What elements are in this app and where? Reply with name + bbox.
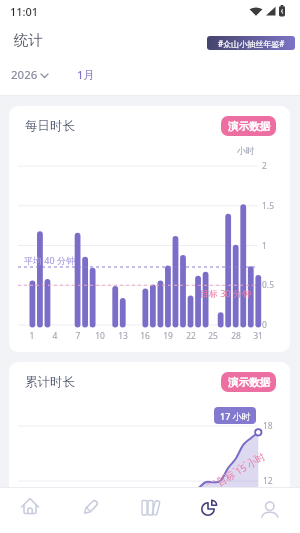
staticText: 每日时长 [25,118,75,134]
staticText: 22 [183,330,199,342]
staticText: 统计 [14,31,43,49]
button[interactable]: 2026 [11,67,50,83]
staticText: 目标 15 小时 [214,450,267,489]
staticText: 2 [262,160,267,172]
staticText: 7 [70,330,86,342]
staticText: 17 小时 [220,410,251,422]
button[interactable]: 1月 [77,67,95,82]
button[interactable] [0,487,60,533]
button[interactable] [180,487,240,533]
staticText: 1.5 [262,200,275,212]
button[interactable] [60,487,120,533]
staticText: 12 [263,475,273,487]
staticText: 28 [228,330,244,342]
staticText: 19 [160,330,176,342]
staticText: 31 [250,330,266,342]
staticText: 0.5 [262,279,275,291]
staticText: 1 [24,330,40,342]
staticText: #众山小抽丝年鉴# [218,38,285,49]
staticText: 小时 [237,145,255,156]
staticText: 25 [205,330,221,342]
staticText: 13 [115,330,131,342]
staticText: 0 [262,319,267,331]
staticText: 平均 40 分钟 [24,254,75,266]
staticText: 16 [137,330,153,342]
staticText: 2026 [11,67,38,83]
button[interactable] [240,487,300,533]
staticText: 4 [47,330,63,342]
staticText: 目标 30 分钟 [200,287,251,299]
button[interactable] [120,487,180,533]
staticText: 11:01 [10,4,39,19]
staticText: 1 [262,240,267,252]
button[interactable]: 演示数据 [221,372,276,392]
staticText: 演示数据 [228,120,270,133]
button[interactable]: 演示数据 [221,116,276,136]
button[interactable]: #众山小抽丝年鉴# [207,36,295,50]
staticText: 18 [263,420,273,432]
staticText: 累计时长 [25,374,75,390]
staticText: 10 [92,330,108,342]
staticText: 演示数据 [228,376,270,389]
